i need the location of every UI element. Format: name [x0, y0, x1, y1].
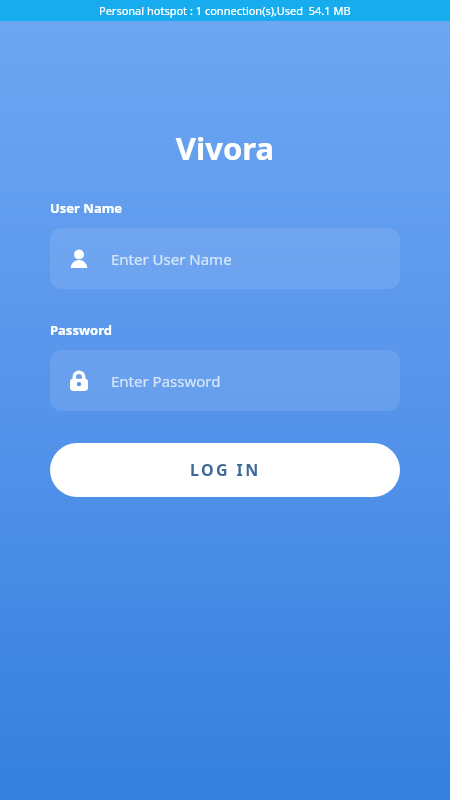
staticText: Vivora [0, 127, 450, 169]
staticText: LOG IN [190, 459, 261, 481]
staticText: Personal hotspot : 1 connection(s),Used … [99, 3, 351, 18]
staticText: Enter User Name [111, 249, 232, 269]
button[interactable]: Password [50, 350, 400, 411]
button[interactable]: User name [50, 228, 400, 289]
button[interactable]: LOG IN [50, 443, 400, 497]
staticText: User Name [50, 199, 123, 217]
staticText: Enter Password [111, 371, 221, 391]
staticText: Password [50, 321, 112, 339]
